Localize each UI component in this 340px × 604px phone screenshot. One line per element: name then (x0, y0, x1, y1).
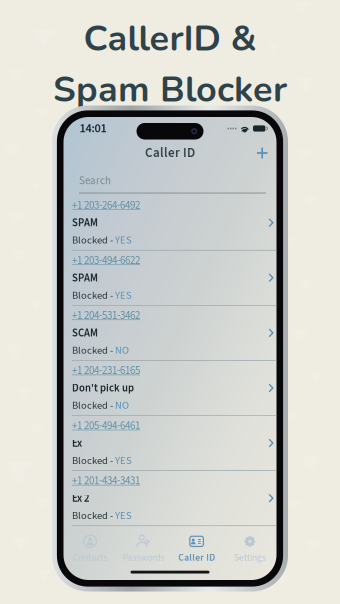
button[interactable]: Contacts (63, 535, 117, 565)
button[interactable]: +1 201-434-3431 (63, 471, 276, 526)
staticText: Blocked - (72, 288, 113, 303)
staticText: +1 204-231-6165 (72, 363, 140, 378)
staticText: +1 203-264-6492 (72, 198, 140, 213)
staticText: NO (115, 343, 129, 358)
staticText: Ex (72, 436, 82, 451)
staticText: NO (115, 398, 129, 413)
button[interactable]: +1 204-531-3462 (63, 306, 276, 361)
staticText: Spam Blocker (53, 65, 287, 114)
button[interactable]: +1 203-264-6492 (63, 195, 276, 251)
staticText: Don't pick up (72, 381, 134, 396)
staticText: Settings (234, 551, 266, 565)
staticText: SCAM (72, 326, 98, 341)
staticText: Passwords (122, 551, 164, 565)
button[interactable]: Caller ID (170, 535, 223, 565)
staticText: CallerID & (83, 14, 256, 63)
staticText: SPAM (72, 270, 98, 286)
staticText: Search (79, 173, 111, 189)
staticText: +1 205-494-6461 (72, 418, 140, 434)
staticText: Ex 2 (72, 491, 89, 506)
staticText: YES (115, 233, 132, 248)
button[interactable]: Settings (223, 535, 276, 565)
staticText: +1 204-531-3462 (72, 308, 140, 323)
staticText: +1 201-434-3431 (72, 473, 140, 489)
staticText: Blocked - (72, 233, 113, 248)
staticText: YES (115, 508, 132, 523)
staticText: YES (115, 453, 132, 468)
button[interactable]: Passwords (117, 535, 170, 565)
staticText: YES (115, 288, 132, 303)
staticText: Caller ID (145, 144, 195, 162)
staticText: Blocked - (72, 508, 113, 523)
staticText: Blocked - (72, 343, 113, 358)
staticText: Blocked - (72, 453, 113, 468)
button[interactable]: Add number (252, 143, 272, 163)
button[interactable]: +1 204-231-6165 (63, 361, 276, 416)
staticText: +1 203-494-6622 (72, 253, 140, 268)
staticText: 14:01 (79, 120, 106, 137)
staticText: Caller ID (178, 551, 215, 565)
staticText: Blocked - (72, 398, 113, 413)
staticText: SPAM (72, 215, 98, 231)
button[interactable]: +1 205-494-6461 (63, 416, 276, 471)
staticText: Contacts (73, 551, 107, 565)
button[interactable]: +1 203-494-6622 (63, 251, 276, 306)
